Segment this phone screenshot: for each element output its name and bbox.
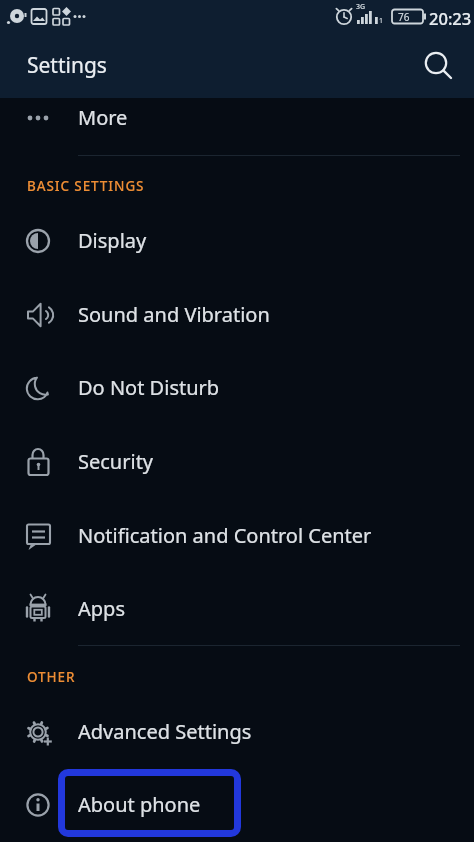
staticText: 1 — [379, 16, 384, 26]
button[interactable]: More — [0, 81, 474, 154]
staticText: Security — [78, 448, 154, 475]
button[interactable]: Sound and Vibration — [0, 278, 474, 351]
staticText: Apps — [78, 595, 125, 622]
staticText: 3G — [356, 2, 366, 12]
button[interactable]: Apps — [0, 572, 474, 645]
button[interactable]: About phone — [0, 768, 474, 841]
staticText: 20:23 — [429, 7, 472, 29]
button[interactable] — [423, 51, 453, 81]
staticText: Do Not Disturb — [78, 374, 220, 401]
staticText: Display — [78, 227, 147, 254]
staticText: BASIC SETTINGS — [27, 177, 145, 195]
staticText: 76 — [398, 10, 410, 24]
button[interactable]: Security — [0, 425, 474, 498]
button[interactable]: Advanced Settings — [0, 695, 474, 768]
button[interactable]: Do Not Disturb — [0, 351, 474, 424]
staticText: About phone — [78, 791, 201, 818]
staticText: Sound and Vibration — [78, 301, 270, 328]
button[interactable]: Display — [0, 204, 474, 277]
button[interactable]: Notification and Control Center — [0, 499, 474, 572]
staticText: Settings — [27, 51, 107, 80]
staticText: OTHER — [27, 668, 76, 686]
staticText: Notification and Control Center — [78, 522, 372, 549]
staticText: Advanced Settings — [78, 718, 252, 745]
staticText: More — [78, 104, 128, 131]
